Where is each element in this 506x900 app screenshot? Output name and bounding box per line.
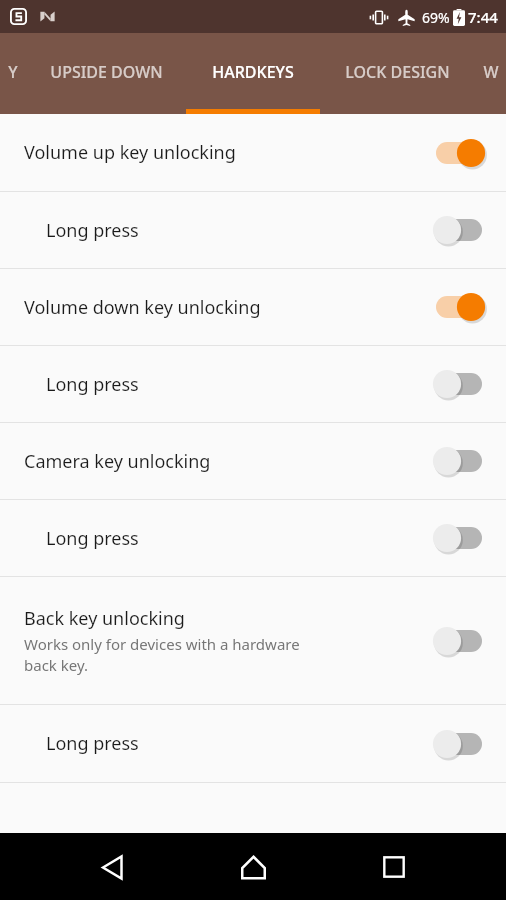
- staticText: Volume down key unlocking: [24, 295, 261, 320]
- staticText: W: [483, 61, 499, 83]
- button[interactable]: Long press: [0, 705, 506, 782]
- staticText: Long press: [46, 526, 139, 551]
- staticText: LOCK DESIGN: [345, 61, 450, 83]
- staticText: UPSIDE DOWN: [50, 61, 163, 83]
- staticText: HARDKEYS: [212, 61, 294, 83]
- button[interactable]: UPSIDE DOWN: [26, 31, 186, 112]
- button[interactable]: Off: [432, 727, 486, 761]
- button[interactable]: Off: [432, 444, 486, 478]
- button[interactable]: LOCK DESIGN: [320, 31, 475, 112]
- button[interactable]: Volume down key unlocking: [0, 269, 506, 345]
- staticText: Long press: [46, 372, 139, 397]
- staticText: 69%: [422, 8, 450, 27]
- button[interactable]: Back key unlocking: [0, 577, 506, 704]
- staticText: Long press: [46, 731, 139, 756]
- staticText: Camera key unlocking: [24, 449, 211, 474]
- button[interactable]: Off: [432, 624, 486, 658]
- button[interactable]: On: [432, 290, 486, 324]
- button[interactable]: Volume up key unlocking: [0, 114, 506, 191]
- staticText: Y: [8, 61, 18, 83]
- button[interactable]: Back: [85, 839, 141, 895]
- staticText: Works only for devices with a hardware b…: [24, 634, 300, 676]
- staticText: Back key unlocking: [24, 606, 185, 631]
- button[interactable]: Long press: [0, 346, 506, 422]
- button[interactable]: Y: [0, 31, 26, 112]
- button[interactable]: Off: [432, 213, 486, 247]
- button[interactable]: Long press: [0, 500, 506, 576]
- button[interactable]: Off: [432, 367, 486, 401]
- button[interactable]: Home: [225, 839, 281, 895]
- staticText: Volume up key unlocking: [24, 140, 236, 165]
- staticText: 7:44: [468, 7, 498, 27]
- button[interactable]: Long press: [0, 192, 506, 268]
- button[interactable]: Off: [432, 521, 486, 555]
- button[interactable]: Recent apps: [366, 839, 422, 895]
- staticText: Long press: [46, 218, 139, 243]
- button[interactable]: HARDKEYS: [186, 31, 320, 112]
- button[interactable]: On: [432, 136, 486, 170]
- button[interactable]: Camera key unlocking: [0, 423, 506, 499]
- button[interactable]: W: [475, 31, 506, 112]
